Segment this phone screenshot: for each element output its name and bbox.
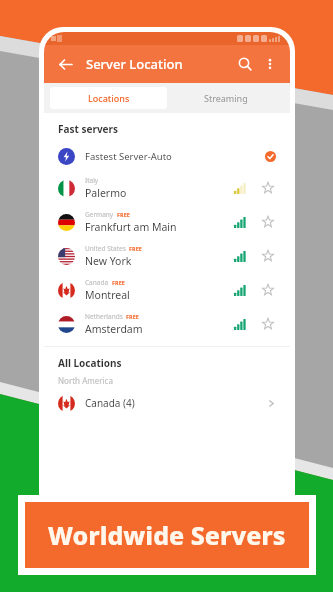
- staticText: Palermo: [85, 186, 127, 200]
- staticText: FREE: [112, 279, 125, 286]
- button[interactable]: Favorite Palermo: [260, 180, 276, 196]
- staticText: Fastest Server-Auto: [85, 150, 172, 163]
- button[interactable]: Favorite New York: [260, 248, 276, 264]
- button[interactable]: Canada: [44, 273, 290, 307]
- staticText: Amsterdam: [85, 322, 143, 336]
- button[interactable]: Canada (4): [44, 389, 290, 417]
- staticText: North America: [58, 375, 113, 386]
- staticText: Netherlands: [85, 312, 123, 321]
- staticText: All Locations: [58, 356, 122, 370]
- staticText: Montreal: [85, 288, 130, 302]
- staticText: Frankfurt am Main: [85, 220, 177, 234]
- button[interactable]: Back: [54, 53, 76, 75]
- staticText: Canada (4): [85, 396, 135, 410]
- staticText: Locations: [88, 92, 130, 104]
- button[interactable]: Favorite Montreal: [260, 282, 276, 298]
- button[interactable]: More options: [260, 54, 280, 74]
- button[interactable]: Favorite Frankfurt am Main: [260, 214, 276, 230]
- staticText: Fast servers: [58, 122, 119, 136]
- button[interactable]: Italy: [44, 171, 290, 205]
- staticText: United States: [85, 244, 126, 253]
- button[interactable]: Search: [234, 53, 256, 75]
- button[interactable]: Germany: [44, 205, 290, 239]
- staticText: FREE: [129, 245, 142, 252]
- staticText: FREE: [117, 211, 130, 218]
- staticText: New York: [85, 254, 132, 268]
- staticText: Server Location: [86, 55, 183, 73]
- staticText: Worldwide Servers: [48, 518, 286, 552]
- button[interactable]: Netherlands: [44, 307, 290, 341]
- staticText: Streaming: [204, 92, 248, 104]
- staticText: FREE: [126, 313, 139, 320]
- button[interactable]: Worldwide Servers: [25, 502, 309, 568]
- button[interactable]: Locations: [50, 87, 167, 109]
- staticText: Canada: [85, 278, 109, 287]
- button[interactable]: Streaming: [167, 87, 284, 109]
- staticText: Germany: [85, 210, 114, 219]
- staticText: Italy: [85, 176, 99, 185]
- button[interactable]: Fastest Server-Auto: [44, 141, 290, 171]
- button[interactable]: United States: [44, 239, 290, 273]
- button[interactable]: Favorite Amsterdam: [260, 316, 276, 332]
